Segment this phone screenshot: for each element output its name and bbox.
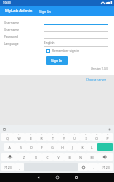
staticText: J — [72, 145, 73, 150]
staticText: N — [79, 155, 82, 160]
button[interactable]: 5 — [47, 133, 58, 141]
staticText: D — [30, 145, 33, 150]
button[interactable]: ?123 — [98, 163, 113, 171]
staticText: Username — [4, 21, 20, 25]
staticText: Version 1.0.0 — [91, 67, 108, 71]
staticText: S — [20, 145, 22, 150]
staticText: T — [52, 136, 54, 141]
button[interactable]: V — [53, 153, 64, 161]
button[interactable]: J — [67, 143, 77, 151]
staticText: F — [41, 145, 43, 150]
button[interactable]: Z — [18, 153, 30, 161]
button[interactable]: 8 — [80, 133, 91, 141]
button[interactable]: Username — [0, 26, 114, 33]
staticText: L — [91, 145, 93, 150]
staticText: Q — [6, 136, 9, 141]
button[interactable]: Keyboard settings — [108, 128, 111, 131]
staticText: 0 — [107, 133, 109, 136]
button[interactable]: N — [75, 153, 86, 161]
button[interactable]: Backspace — [97, 153, 113, 161]
staticText: Password — [4, 35, 18, 39]
button[interactable]: F — [37, 143, 47, 151]
staticText: . — [93, 165, 94, 170]
staticText: English — [44, 41, 55, 45]
button[interactable]: Recents — [72, 173, 81, 182]
button[interactable]: 1 — [1, 133, 13, 141]
button[interactable]: Enter — [97, 143, 113, 151]
staticText: MyLab Admin — [5, 8, 33, 14]
button[interactable]: Sign In — [38, 8, 52, 15]
staticText: Choose server — [86, 78, 107, 82]
button[interactable]: C — [42, 153, 53, 161]
button[interactable]: Back — [34, 173, 43, 182]
button[interactable]: Choose server — [85, 77, 108, 83]
staticText: 9 — [96, 133, 98, 136]
button[interactable]: Home — [53, 173, 62, 182]
button[interactable]: Sign In — [46, 56, 68, 65]
button[interactable]: H — [57, 143, 67, 151]
staticText: Y — [63, 136, 65, 141]
button[interactable]: 9 — [91, 133, 102, 141]
button[interactable]: 6 — [58, 133, 69, 141]
staticText: 7 — [74, 133, 76, 136]
staticText: , — [19, 165, 20, 170]
button[interactable]: M — [86, 153, 97, 161]
button[interactable]: S — [15, 143, 26, 151]
button[interactable]: L — [87, 143, 97, 151]
staticText: O — [95, 136, 98, 141]
button[interactable]: K — [77, 143, 87, 151]
button[interactable]: Language — [0, 40, 114, 47]
staticText: 8 — [85, 133, 87, 136]
button[interactable]: , — [15, 163, 24, 171]
staticText: B — [68, 155, 71, 160]
staticText: E — [30, 136, 32, 141]
staticText: I — [85, 136, 87, 141]
staticText: V — [57, 155, 60, 160]
staticText: P — [106, 136, 109, 141]
staticText: G — [51, 145, 54, 150]
staticText: 6 — [63, 133, 65, 136]
button[interactable]: Emoji — [78, 163, 88, 171]
button[interactable]: B — [64, 153, 75, 161]
staticText: 3 — [30, 133, 32, 136]
button[interactable]: Clipboard — [3, 128, 6, 131]
button[interactable]: X — [30, 153, 42, 161]
staticText: Sign In — [39, 9, 51, 14]
staticText: H — [61, 145, 64, 150]
button[interactable]: 4 — [36, 133, 47, 141]
staticText: ?123 — [4, 165, 12, 170]
button[interactable]: D — [26, 143, 37, 151]
button[interactable]: A — [4, 143, 15, 151]
button[interactable]: 3 — [25, 133, 36, 141]
staticText: ?123 — [102, 165, 110, 170]
button[interactable]: 7 — [69, 133, 80, 141]
staticText: U — [73, 136, 76, 141]
button[interactable]: Shift — [1, 153, 18, 161]
staticText: Sign In — [51, 58, 63, 63]
staticText: M — [90, 155, 94, 160]
button[interactable]: 2 — [13, 133, 25, 141]
button[interactable]: 0 — [102, 133, 113, 141]
staticText: R — [40, 136, 43, 141]
button[interactable]: Remember sign in — [46, 49, 108, 53]
staticText: K — [81, 145, 84, 150]
staticText: C — [46, 155, 49, 160]
staticText: W — [17, 136, 21, 141]
staticText: 1 — [7, 133, 9, 136]
staticText: 10:30 — [3, 1, 11, 5]
staticText: Username — [4, 28, 20, 32]
staticText: Language — [4, 42, 19, 46]
staticText: Remember sign in — [52, 49, 80, 53]
button[interactable]: G — [47, 143, 57, 151]
staticText: A — [8, 145, 11, 150]
staticText: 4 — [41, 133, 43, 136]
button[interactable]: Username — [0, 19, 114, 26]
staticText: 5 — [52, 133, 54, 136]
staticText: 2 — [18, 133, 20, 136]
staticText: X — [35, 155, 37, 160]
button[interactable]: Password — [0, 33, 114, 40]
staticText: Z — [23, 155, 25, 160]
button[interactable]: ?123 — [1, 163, 15, 171]
